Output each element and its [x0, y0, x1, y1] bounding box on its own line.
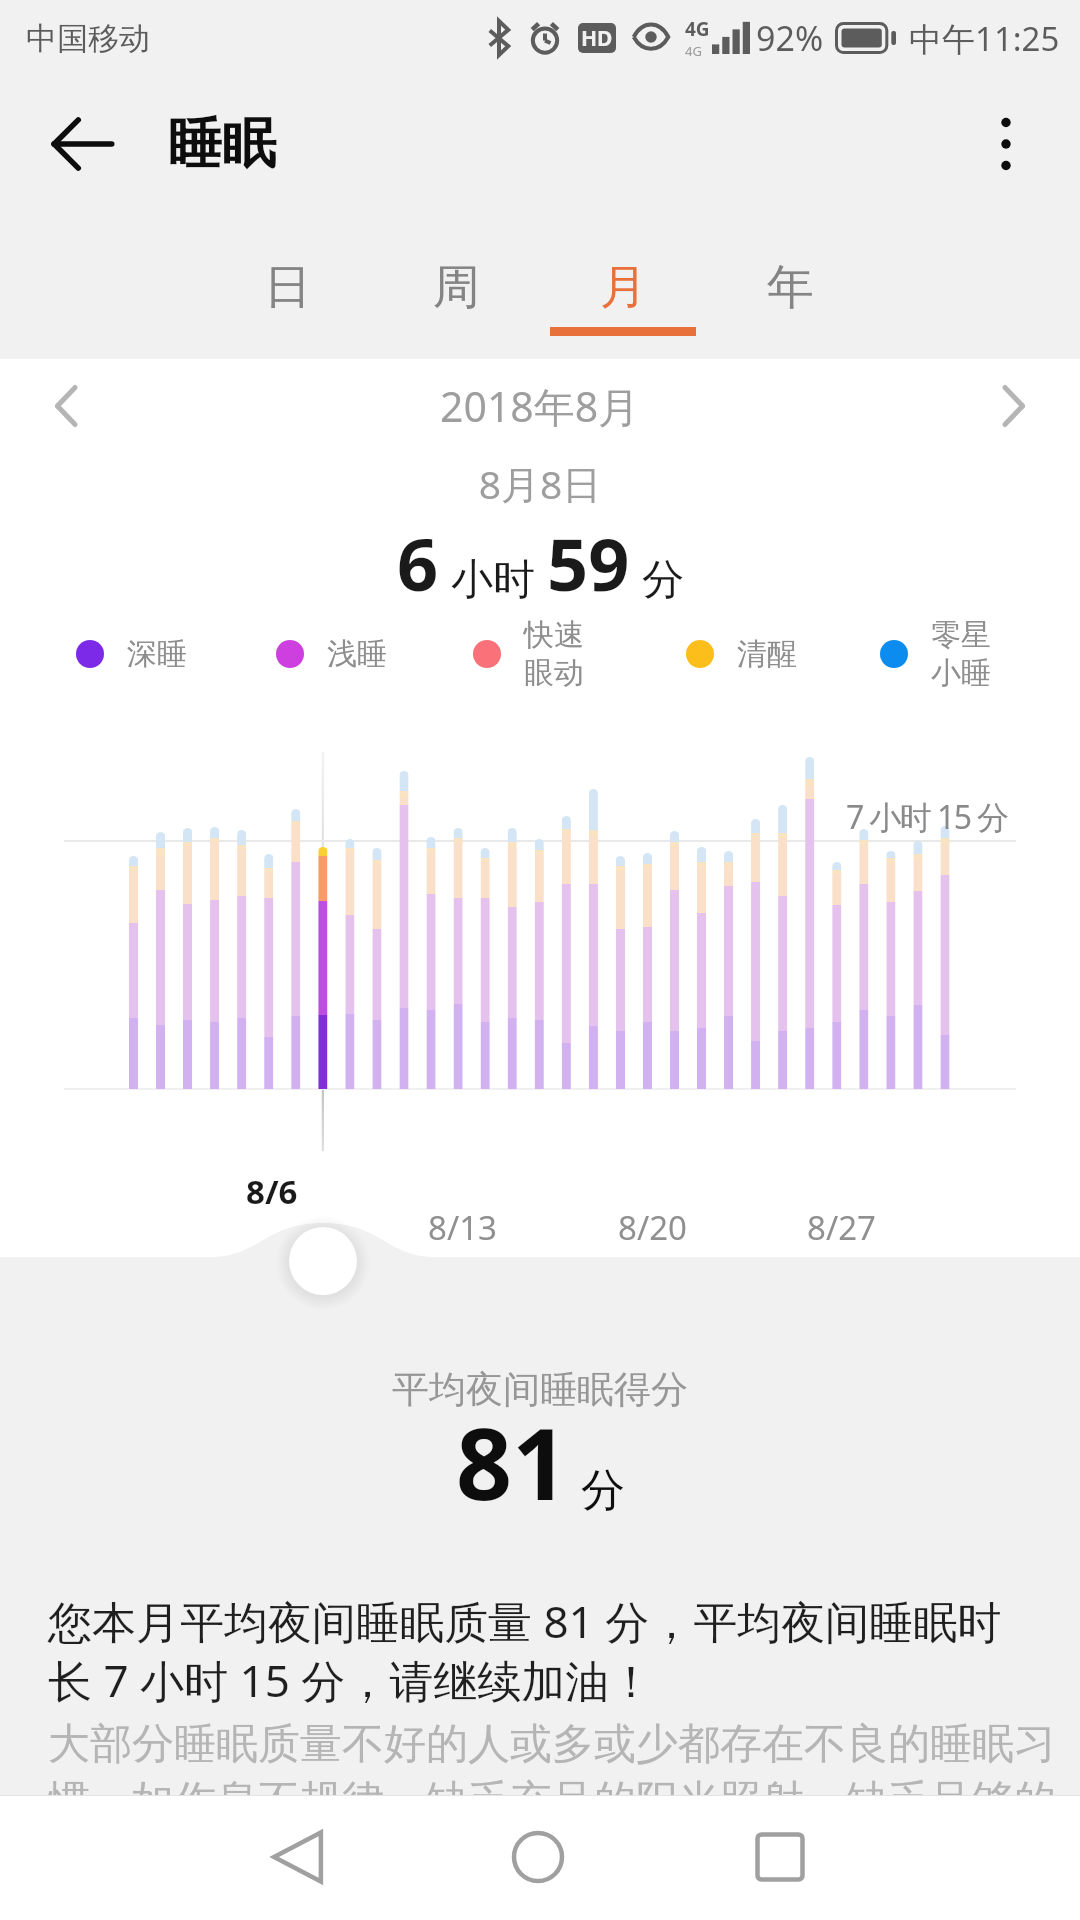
- button[interactable]: Next month: [972, 366, 1052, 446]
- staticText: 小时: [451, 554, 535, 607]
- button[interactable]: Back: [238, 1797, 358, 1917]
- button[interactable]: 年: [706, 212, 874, 359]
- staticText: 8/27: [807, 1205, 876, 1250]
- staticText: 中午11:25: [909, 16, 1060, 61]
- staticText: 大部分睡眠质量不好的人或多或少都存在不良的睡眠习惯，如作息不规律、缺乏充足的阳光…: [48, 1718, 1060, 1883]
- staticText: 平均夜间睡眠得分: [0, 1366, 1080, 1413]
- staticText: 81: [456, 1395, 569, 1528]
- staticText: 眼动: [524, 654, 584, 692]
- staticText: 清醒: [737, 635, 797, 673]
- staticText: 睡眠: [168, 110, 276, 178]
- staticText: 深睡: [127, 635, 187, 673]
- button[interactable]: 月: [539, 212, 707, 359]
- button[interactable]: Previous month: [28, 366, 108, 446]
- button[interactable]: 周: [372, 212, 540, 359]
- staticText: 8/13: [428, 1205, 497, 1250]
- button[interactable]: Selected day handle: [289, 1227, 357, 1295]
- staticText: 59: [547, 514, 630, 612]
- staticText: 日: [264, 258, 311, 317]
- staticText: 7 小时 15 分: [846, 795, 1008, 839]
- button[interactable]: More options: [960, 98, 1052, 190]
- staticText: 2018年8月: [440, 378, 640, 434]
- staticText: 您本月平均夜间睡眠质量 81 分，平均夜间睡眠时长 7 小时 15 分，请继续加…: [48, 1591, 1040, 1710]
- button[interactable]: Recent apps: [720, 1797, 840, 1917]
- staticText: 4G: [685, 42, 702, 60]
- staticText: 快速: [524, 616, 584, 654]
- button[interactable]: Back: [32, 94, 132, 194]
- staticText: 6: [397, 514, 439, 612]
- staticText: 8月8日: [0, 457, 1080, 510]
- staticText: 小睡: [931, 654, 991, 692]
- staticText: 8/20: [618, 1205, 687, 1250]
- button[interactable]: Home: [478, 1797, 598, 1917]
- staticText: 分: [581, 1463, 625, 1518]
- staticText: 月: [600, 258, 647, 317]
- staticText: HD: [581, 24, 613, 53]
- staticText: 浅睡: [327, 635, 387, 673]
- staticText: 零星: [931, 616, 991, 654]
- button[interactable]: 日: [203, 212, 371, 359]
- staticText: 92%: [756, 15, 824, 61]
- staticText: 8/6: [246, 1169, 298, 1214]
- staticText: 中国移动: [26, 19, 150, 58]
- staticText: 分: [642, 554, 684, 607]
- staticText: 4G: [685, 16, 710, 42]
- staticText: 周: [433, 258, 480, 317]
- staticText: 年: [767, 258, 814, 317]
